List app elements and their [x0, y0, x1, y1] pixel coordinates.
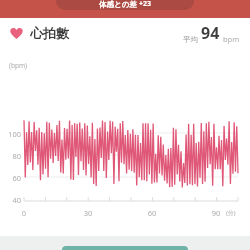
staticText: +23 — [139, 0, 152, 9]
staticText: 平均 — [183, 35, 198, 44]
staticText: 60 — [142, 208, 162, 218]
staticText: 心拍數 — [30, 25, 69, 41]
button[interactable] — [62, 246, 188, 250]
staticText: 100 — [4, 129, 21, 139]
staticText: 0 — [14, 208, 34, 218]
staticText: 80 — [4, 151, 21, 161]
staticText: 94 — [201, 22, 220, 44]
staticText: (分) — [226, 209, 236, 217]
staticText: 40 — [4, 195, 21, 205]
button[interactable]: 体感との差 — [56, 0, 194, 10]
staticText: 体感との差 — [99, 0, 137, 9]
staticText: (bpm) — [9, 61, 27, 70]
staticText: 90 — [206, 208, 226, 218]
staticText: bpm — [223, 34, 240, 44]
button[interactable]: Heart rate — [0, 18, 250, 48]
staticText: 60 — [4, 173, 21, 183]
button[interactable]: (bpm) — [0, 48, 250, 236]
other: Heart rate — [10, 27, 23, 40]
staticText: 30 — [78, 208, 98, 218]
